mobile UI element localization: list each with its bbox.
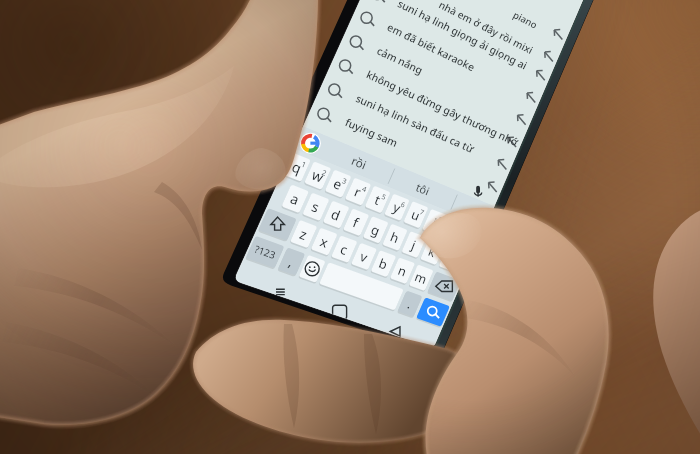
button[interactable]: . — [395, 287, 425, 320]
button[interactable]: d — [320, 197, 352, 232]
button[interactable]: g — [360, 213, 391, 247]
button[interactable]: Recents — [258, 274, 304, 310]
button[interactable]: m — [406, 261, 436, 294]
button[interactable]: o — [438, 213, 467, 246]
button[interactable]: Shift — [255, 205, 299, 244]
button[interactable]: n — [387, 254, 417, 287]
button[interactable]: t — [362, 182, 393, 216]
button[interactable]: cảm nắng — [342, 26, 531, 132]
button[interactable]: Search — [414, 294, 453, 330]
button[interactable]: rồi — [323, 140, 395, 185]
button[interactable]: b — [368, 247, 399, 281]
button[interactable]: a — [279, 181, 312, 216]
button[interactable]: k — [418, 235, 448, 268]
button[interactable]: tôi — [388, 167, 456, 210]
button[interactable]: suni hạ linh giọng ải giọng ai — [364, 0, 550, 89]
button[interactable]: , — [275, 244, 308, 279]
button[interactable]: Emoji — [296, 252, 329, 287]
button[interactable]: j — [399, 228, 429, 261]
button[interactable]: Backspace — [425, 268, 463, 304]
button[interactable]: z — [287, 216, 320, 251]
button[interactable]: ?123 — [243, 232, 287, 271]
button[interactable]: p — [456, 220, 485, 253]
button[interactable]: x — [308, 224, 340, 259]
button[interactable]: Home — [318, 295, 362, 330]
button[interactable]: s — [300, 189, 333, 224]
button[interactable]: Google — [296, 129, 329, 158]
button[interactable]: không yêu đừng gây thương nhớ — [331, 50, 521, 155]
button[interactable]: r — [342, 174, 374, 209]
button[interactable]: v — [348, 239, 379, 273]
button[interactable]: h — [380, 220, 411, 254]
button[interactable]: f — [340, 205, 372, 239]
button[interactable]: y — [382, 190, 413, 224]
button[interactable]: Voice search — [463, 175, 496, 211]
button[interactable]: i — [420, 206, 450, 239]
button[interactable]: e — [322, 166, 354, 201]
button[interactable]: w — [301, 158, 334, 193]
button[interactable]: q — [280, 149, 313, 185]
button[interactable]: u — [401, 198, 431, 232]
button[interactable]: suni hạ linh sàn đấu ca từ — [321, 75, 513, 178]
button[interactable]: Back — [376, 315, 418, 348]
button[interactable]: Space — [316, 259, 406, 314]
button[interactable]: l — [436, 242, 465, 275]
button[interactable]: fuying sam — [310, 99, 503, 200]
button[interactable]: em đã biết karaoke — [353, 3, 541, 111]
button[interactable]: c — [328, 232, 360, 266]
